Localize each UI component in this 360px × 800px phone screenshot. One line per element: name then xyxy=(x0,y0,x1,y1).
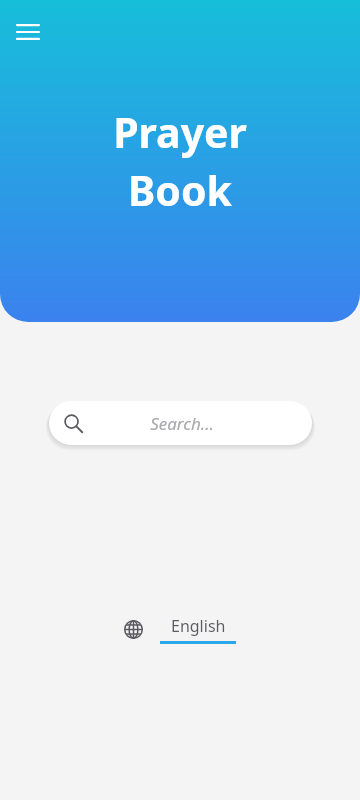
button[interactable]: Open navigation menu xyxy=(8,12,48,52)
staticText: Book xyxy=(128,162,232,218)
staticText: Prayer xyxy=(113,104,247,160)
button[interactable]: Search... xyxy=(49,401,312,445)
staticText: Search... xyxy=(150,412,214,435)
staticText: English xyxy=(171,615,226,637)
button[interactable]: English xyxy=(124,615,236,644)
